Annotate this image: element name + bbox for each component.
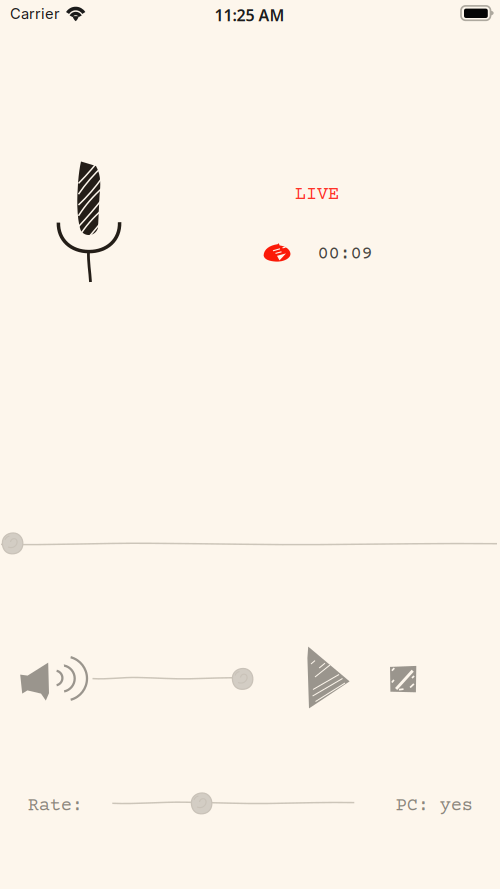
button[interactable]: Playback position <box>1 532 497 555</box>
button[interactable]: Record <box>55 158 123 284</box>
button[interactable]: Volume <box>20 655 87 701</box>
button[interactable]: Rate <box>112 792 354 815</box>
staticText: LIVE <box>295 184 339 205</box>
staticText: Rate: <box>28 796 83 817</box>
staticText: Carrier <box>10 5 60 22</box>
staticText: 00:09 <box>317 244 372 265</box>
button[interactable]: Play <box>307 646 350 709</box>
button[interactable]: PC: yes <box>396 796 473 817</box>
button[interactable]: Stop <box>389 665 417 693</box>
button[interactable]: Volume level <box>92 667 254 690</box>
staticText: PC: yes <box>396 796 473 817</box>
staticText: 11:25 AM <box>214 4 284 25</box>
